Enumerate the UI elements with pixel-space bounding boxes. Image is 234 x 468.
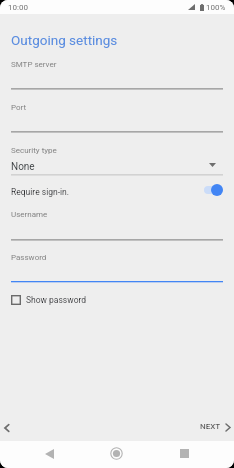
staticText: Username — [11, 210, 48, 219]
button[interactable]: Previous — [0, 414, 20, 434]
button[interactable]: Recent apps — [173, 442, 195, 464]
staticText: 100% — [206, 3, 226, 12]
staticText: SMTP server — [11, 60, 57, 69]
staticText: Outgoing settings — [11, 32, 118, 48]
button[interactable]: None — [0, 157, 234, 174]
staticText: Require sign-in. — [11, 187, 70, 197]
staticText: Security type — [11, 146, 57, 155]
button[interactable]: Home — [105, 442, 127, 464]
button[interactable]: Require sign-in. — [0, 181, 234, 200]
staticText: Port — [11, 103, 27, 112]
button[interactable]: Port — [0, 101, 234, 134]
staticText: NEXT — [200, 422, 221, 431]
button[interactable]: SMTP server — [0, 58, 234, 91]
button[interactable]: Back — [38, 443, 60, 465]
staticText: Show password — [26, 295, 87, 305]
button[interactable]: Show password — [0, 291, 234, 309]
button[interactable]: Next — [196, 417, 234, 437]
button[interactable]: Username — [0, 208, 234, 242]
button[interactable]: Password — [0, 251, 234, 284]
button[interactable]: Security type — [0, 144, 234, 177]
staticText: 10:00 — [8, 3, 28, 12]
staticText: None — [11, 161, 35, 173]
staticText: Password — [11, 253, 47, 262]
